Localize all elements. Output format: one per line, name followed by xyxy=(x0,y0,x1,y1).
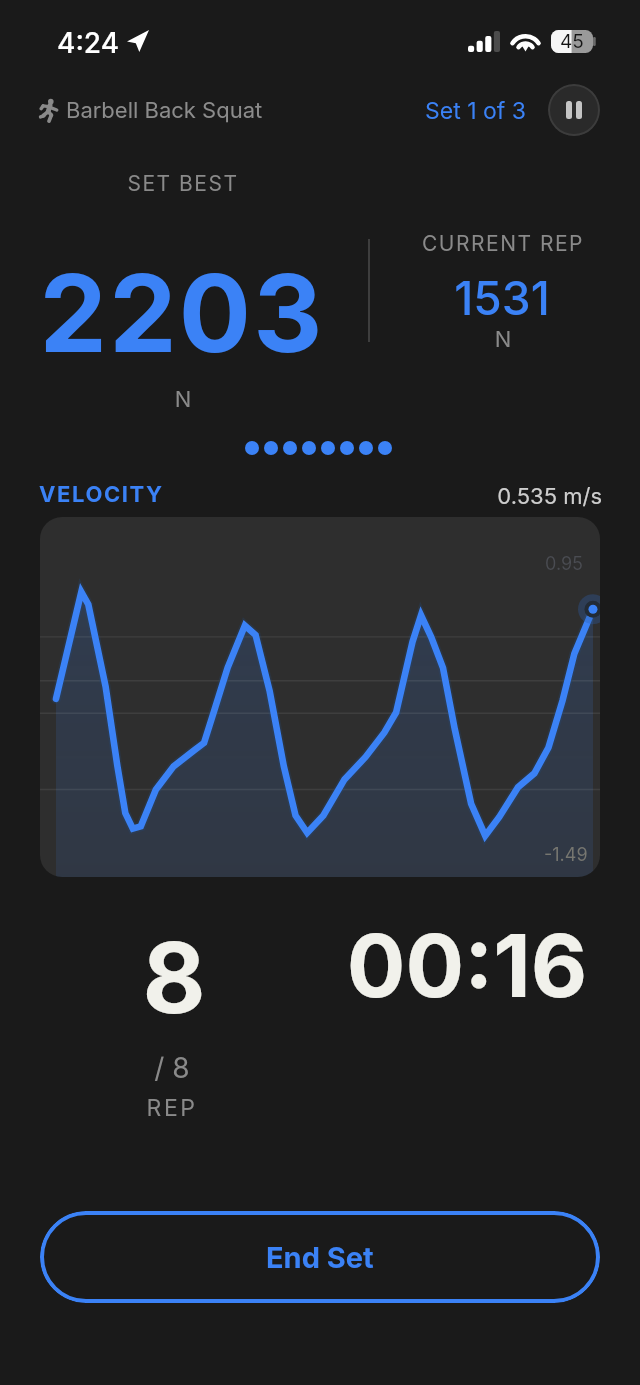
staticText: N xyxy=(403,326,603,353)
staticText: / 8 xyxy=(72,1051,272,1085)
button[interactable]: Pause xyxy=(548,84,600,136)
button[interactable]: End Set xyxy=(40,1211,600,1303)
staticText: N xyxy=(83,386,283,413)
staticText: 00:16 xyxy=(267,913,640,1018)
staticText: CURRENT REP xyxy=(353,231,640,256)
staticText: -1.49 xyxy=(544,844,588,866)
staticText: 8 xyxy=(24,919,324,1036)
staticText: REP xyxy=(72,1094,272,1122)
staticText: 0.535 m/s xyxy=(400,483,602,510)
staticText: 45 xyxy=(560,30,584,53)
button[interactable]: Set 1 of 3 xyxy=(425,97,526,125)
staticText: VELOCITY xyxy=(39,481,164,508)
staticText: Barbell Back Squat xyxy=(66,97,263,124)
staticText: SET BEST xyxy=(33,171,333,196)
staticText: 4:24 xyxy=(57,26,120,60)
staticText: 1531 xyxy=(352,270,640,326)
staticText: 0.95 xyxy=(545,553,584,575)
staticText: End Set xyxy=(266,1240,374,1275)
staticText: 2203 xyxy=(0,248,382,377)
